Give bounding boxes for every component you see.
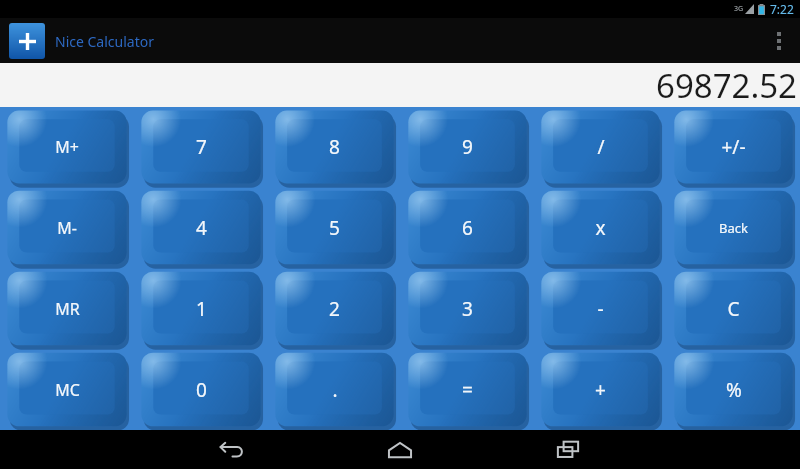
button[interactable]: 5 [268,187,401,268]
button[interactable]: C [667,268,800,349]
button[interactable]: Back [667,187,800,268]
button[interactable]: . [268,349,401,430]
staticText: = [462,377,473,403]
button[interactable]: Nice Calculator [0,23,154,59]
button[interactable]: MC [0,349,134,430]
staticText: 3 [462,296,473,322]
staticText: 7:22 [770,1,794,17]
staticText: 7 [196,134,207,160]
staticText: 5 [329,215,340,241]
staticText: / [597,134,605,160]
button[interactable]: 8 [268,107,401,187]
button[interactable]: + [534,349,667,430]
button[interactable]: M+ [0,107,134,187]
staticText: Back [719,219,748,237]
staticText: 4 [196,215,207,241]
staticText: 69872.52 [656,63,797,107]
staticText: MC [55,379,80,401]
staticText: - [597,296,604,322]
button[interactable]: 3 [401,268,534,349]
staticText: 1 [196,296,207,322]
button[interactable]: Recent apps [540,430,596,469]
staticText: C [727,296,740,322]
button[interactable]: / [534,107,667,187]
staticText: . [332,377,338,403]
staticText: Nice Calculator [55,32,154,51]
button[interactable]: 7 [134,107,268,187]
button[interactable]: Home [372,430,428,469]
staticText: 8 [329,134,340,160]
button[interactable]: M- [0,187,134,268]
staticText: M+ [55,136,79,158]
staticText: +/- [721,134,746,160]
staticText: x [595,215,606,241]
button[interactable]: 9 [401,107,534,187]
button[interactable]: - [534,268,667,349]
button[interactable]: +/- [667,107,800,187]
staticText: M- [57,217,77,239]
button[interactable]: = [401,349,534,430]
staticText: MR [55,298,80,320]
button[interactable]: 6 [401,187,534,268]
staticText: 6 [462,215,473,241]
staticText: 3G [734,4,744,14]
button[interactable]: 0 [134,349,268,430]
button[interactable]: 1 [134,268,268,349]
button[interactable]: % [667,349,800,430]
button[interactable]: x [534,187,667,268]
button[interactable]: 2 [268,268,401,349]
button[interactable]: Back [204,430,260,469]
button[interactable]: 69872.52 [0,63,800,107]
staticText: 2 [329,296,340,322]
staticText: 0 [196,377,207,403]
button[interactable]: 4 [134,187,268,268]
staticText: 9 [462,134,473,160]
button[interactable]: MR [0,268,134,349]
staticText: + [595,377,606,403]
button[interactable]: More options [758,18,800,63]
staticText: % [726,377,742,403]
